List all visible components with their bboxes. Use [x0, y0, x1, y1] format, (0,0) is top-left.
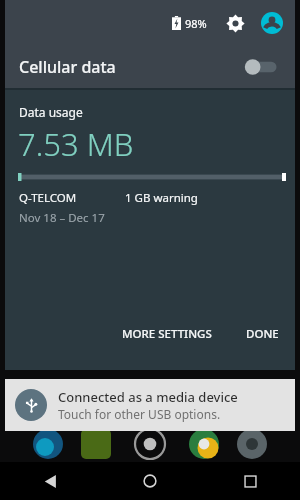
- button[interactable]: User profile: [259, 10, 285, 36]
- button[interactable]: Settings: [222, 10, 248, 36]
- staticText: Q-TELCOM: [19, 190, 77, 206]
- staticText: Data usage: [19, 104, 83, 120]
- button[interactable]: Back: [0, 462, 100, 500]
- staticText: 7.53 MB: [18, 123, 134, 165]
- staticText: MORE SETTINGS: [122, 326, 212, 342]
- staticText: Cellular data: [19, 56, 116, 78]
- staticText: 98%: [185, 16, 207, 31]
- button[interactable]: Cellular data toggle: [239, 52, 285, 82]
- button[interactable]: Home: [100, 462, 200, 500]
- button[interactable]: MORE SETTINGS: [112, 320, 222, 348]
- staticText: Connected as a media device: [58, 388, 238, 406]
- staticText: 1 GB warning: [125, 190, 198, 206]
- button[interactable]: Recent apps: [200, 462, 300, 500]
- button[interactable]: DONE: [236, 320, 289, 348]
- button[interactable]: Connected as a media device: [5, 379, 295, 431]
- staticText: Nov 18 – Dec 17: [19, 210, 105, 226]
- staticText: DONE: [246, 326, 279, 342]
- staticText: Touch for other USB options.: [58, 406, 221, 422]
